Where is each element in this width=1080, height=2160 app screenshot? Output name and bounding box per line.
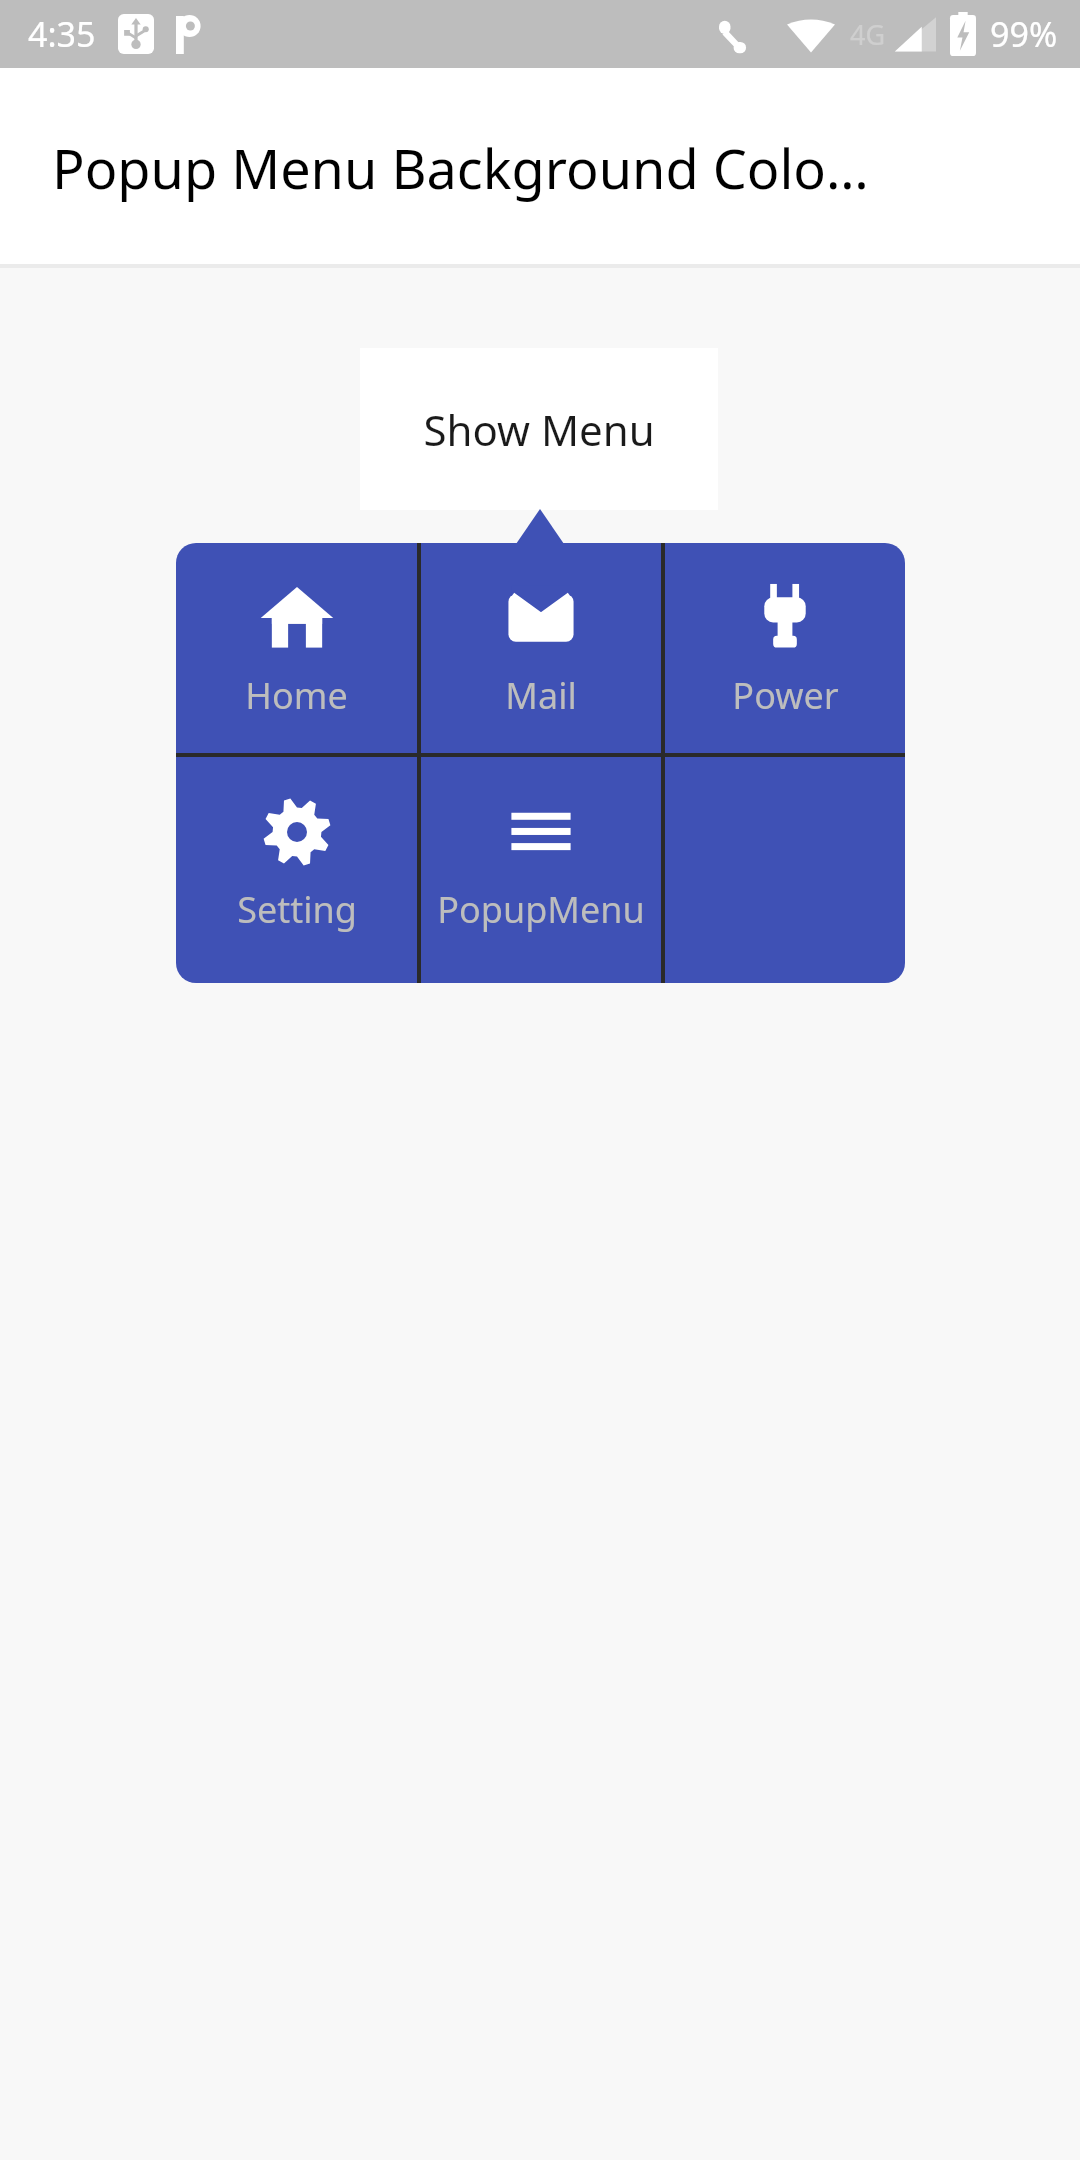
staticText: Popup Menu Background Colo… [52,131,869,205]
staticText: Setting [237,885,357,934]
staticText: 4G [850,16,886,53]
staticText: Show Menu [423,401,655,458]
staticText: 99% [990,11,1058,57]
staticText: Home [245,671,348,720]
button[interactable]: Setting [176,757,417,983]
button[interactable]: Power [665,543,905,753]
button[interactable]: PopupMenu [421,757,661,983]
staticText: 4:35 [28,11,96,57]
staticText: Mail [505,671,577,720]
button[interactable]: Show Menu [360,348,718,510]
button[interactable]: Home [176,543,417,753]
staticText: Power [732,671,839,720]
button[interactable]: Mail [421,543,661,753]
staticText: PopupMenu [437,885,645,934]
